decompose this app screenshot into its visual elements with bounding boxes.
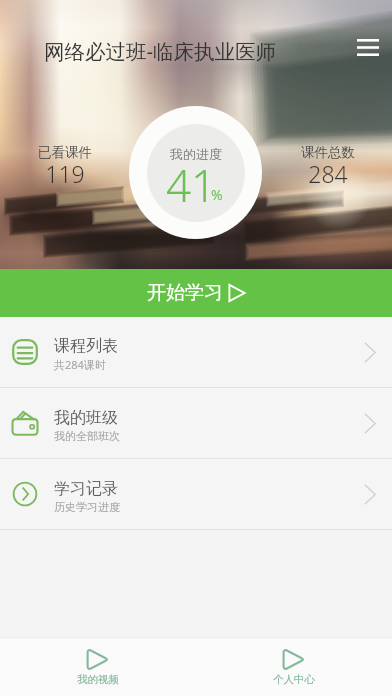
staticText: 我的全部班次 — [54, 429, 120, 443]
staticText: 我的进度 — [170, 146, 222, 162]
button[interactable]: My progress 41 percent — [129, 106, 262, 239]
button[interactable]: Menu — [347, 26, 389, 68]
staticText: 开始学习 — [147, 281, 223, 305]
button[interactable]: 我的视频 — [0, 638, 196, 696]
button[interactable]: 学习记录 — [0, 459, 392, 529]
button[interactable]: 课程列表 — [0, 317, 392, 387]
staticText: 已看课件 — [38, 144, 92, 161]
staticText: 我的班级 — [54, 408, 118, 428]
staticText: 个人中心 — [273, 673, 315, 686]
staticText: 网络必过班-临床执业医师 — [44, 37, 277, 65]
staticText: % — [211, 185, 223, 204]
staticText: 课程列表 — [54, 336, 118, 356]
staticText: 学习记录 — [54, 479, 118, 499]
button[interactable]: 我的班级 — [0, 388, 392, 458]
staticText: 共284课时 — [54, 357, 106, 372]
staticText: 41 — [166, 155, 217, 215]
staticText: 我的视频 — [77, 673, 119, 686]
staticText: 历史学习进度 — [54, 500, 120, 514]
button[interactable]: 开始学习 — [0, 269, 392, 317]
staticText: 119 — [45, 158, 85, 189]
staticText: 284 — [308, 158, 348, 189]
button[interactable]: 个人中心 — [196, 638, 392, 696]
staticText: 课件总数 — [301, 144, 355, 161]
